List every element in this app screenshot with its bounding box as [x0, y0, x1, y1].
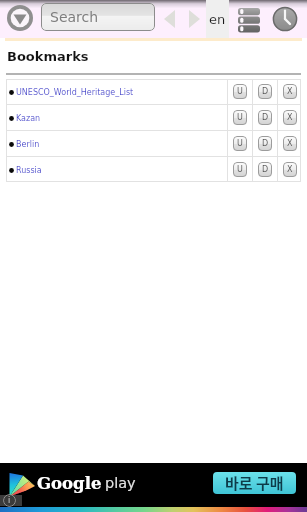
- button[interactable]: X: [278, 105, 301, 130]
- staticText: U: [237, 139, 243, 148]
- button[interactable]: Open menu: [6, 4, 34, 32]
- staticText: X: [287, 165, 293, 174]
- button[interactable]: UNESCO_World_Heritage_List: [6, 79, 227, 104]
- staticText: Russia: [16, 166, 42, 175]
- staticText: Google: [37, 474, 102, 493]
- staticText: i: [8, 496, 11, 505]
- button[interactable]: Berlin: [6, 131, 227, 156]
- button[interactable]: X: [278, 79, 301, 104]
- staticText: D: [262, 165, 269, 174]
- staticText: en: [209, 12, 226, 27]
- staticText: Bookmarks: [7, 49, 89, 64]
- staticText: U: [237, 87, 243, 96]
- button[interactable]: U: [228, 105, 252, 130]
- button[interactable]: X: [278, 157, 301, 182]
- button[interactable]: U: [228, 157, 252, 182]
- button[interactable]: U: [228, 79, 252, 104]
- button[interactable]: 바로 구매: [213, 472, 296, 494]
- button[interactable]: Table of contents: [236, 6, 262, 34]
- staticText: play: [105, 475, 136, 492]
- button[interactable]: D: [253, 157, 277, 182]
- button[interactable]: Ad information: [3, 494, 16, 507]
- staticText: U: [237, 113, 243, 122]
- button[interactable]: en: [206, 0, 229, 38]
- staticText: D: [262, 113, 269, 122]
- staticText: X: [287, 87, 293, 96]
- staticText: UNESCO_World_Heritage_List: [16, 88, 134, 97]
- button[interactable]: Kazan: [6, 105, 227, 130]
- button[interactable]: History: [271, 5, 299, 33]
- button[interactable]: Search: [41, 3, 155, 31]
- staticText: X: [287, 113, 293, 122]
- staticText: Kazan: [16, 114, 41, 123]
- button[interactable]: Forward: [186, 7, 204, 31]
- staticText: X: [287, 139, 293, 148]
- staticText: U: [237, 165, 243, 174]
- button[interactable]: D: [253, 105, 277, 130]
- button[interactable]: D: [253, 79, 277, 104]
- button[interactable]: Russia: [6, 157, 227, 182]
- staticText: Search: [50, 9, 99, 25]
- button[interactable]: D: [253, 131, 277, 156]
- staticText: 바로 구매: [225, 472, 284, 494]
- staticText: D: [262, 87, 269, 96]
- button[interactable]: X: [278, 131, 301, 156]
- button[interactable]: Back: [161, 7, 179, 31]
- button[interactable]: U: [228, 131, 252, 156]
- staticText: Berlin: [16, 140, 40, 149]
- staticText: D: [262, 139, 269, 148]
